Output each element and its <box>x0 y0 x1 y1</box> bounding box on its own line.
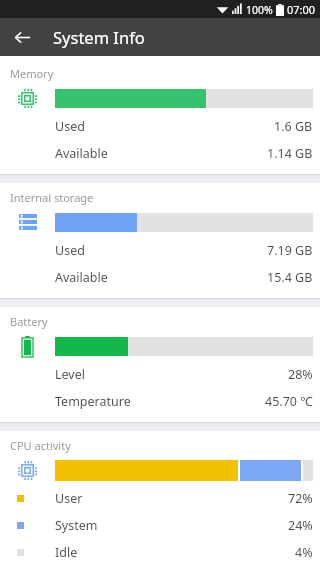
staticText: Idle <box>55 544 78 561</box>
staticText: 28% <box>288 366 313 383</box>
staticText: Battery <box>10 314 48 329</box>
staticText: 7.19 GB <box>267 242 313 259</box>
button[interactable]: User <box>0 485 320 512</box>
staticText: System Info <box>53 26 145 48</box>
staticText: Temperature <box>55 393 131 410</box>
staticText: 45.70 ℃ <box>265 393 313 410</box>
staticText: Used <box>55 118 85 135</box>
staticText: 07:00 <box>287 2 316 17</box>
staticText: 72% <box>288 490 313 507</box>
button[interactable]: Level <box>0 361 320 388</box>
button[interactable]: Available <box>0 264 320 291</box>
staticText: Level <box>55 366 85 383</box>
staticText: Used <box>55 242 85 259</box>
staticText: Available <box>55 145 108 162</box>
button[interactable]: Idle <box>0 539 320 566</box>
button[interactable]: Back <box>8 23 36 51</box>
staticText: 4% <box>295 544 313 561</box>
staticText: CPU activity <box>10 438 71 453</box>
button[interactable]: Used <box>0 113 320 140</box>
button[interactable]: Available <box>0 140 320 167</box>
staticText: 24% <box>288 517 313 534</box>
staticText: 15.4 GB <box>267 269 313 286</box>
button[interactable]: Used <box>0 237 320 264</box>
button[interactable]: Temperature <box>0 388 320 415</box>
staticText: Memory <box>10 66 54 81</box>
staticText: System <box>55 517 98 534</box>
staticText: 1.14 GB <box>267 145 313 162</box>
staticText: 100% <box>246 3 273 17</box>
staticText: 1.6 GB <box>274 118 313 135</box>
staticText: Internal storage <box>10 190 94 205</box>
button[interactable]: System <box>0 512 320 539</box>
staticText: User <box>55 490 83 507</box>
staticText: Available <box>55 269 108 286</box>
